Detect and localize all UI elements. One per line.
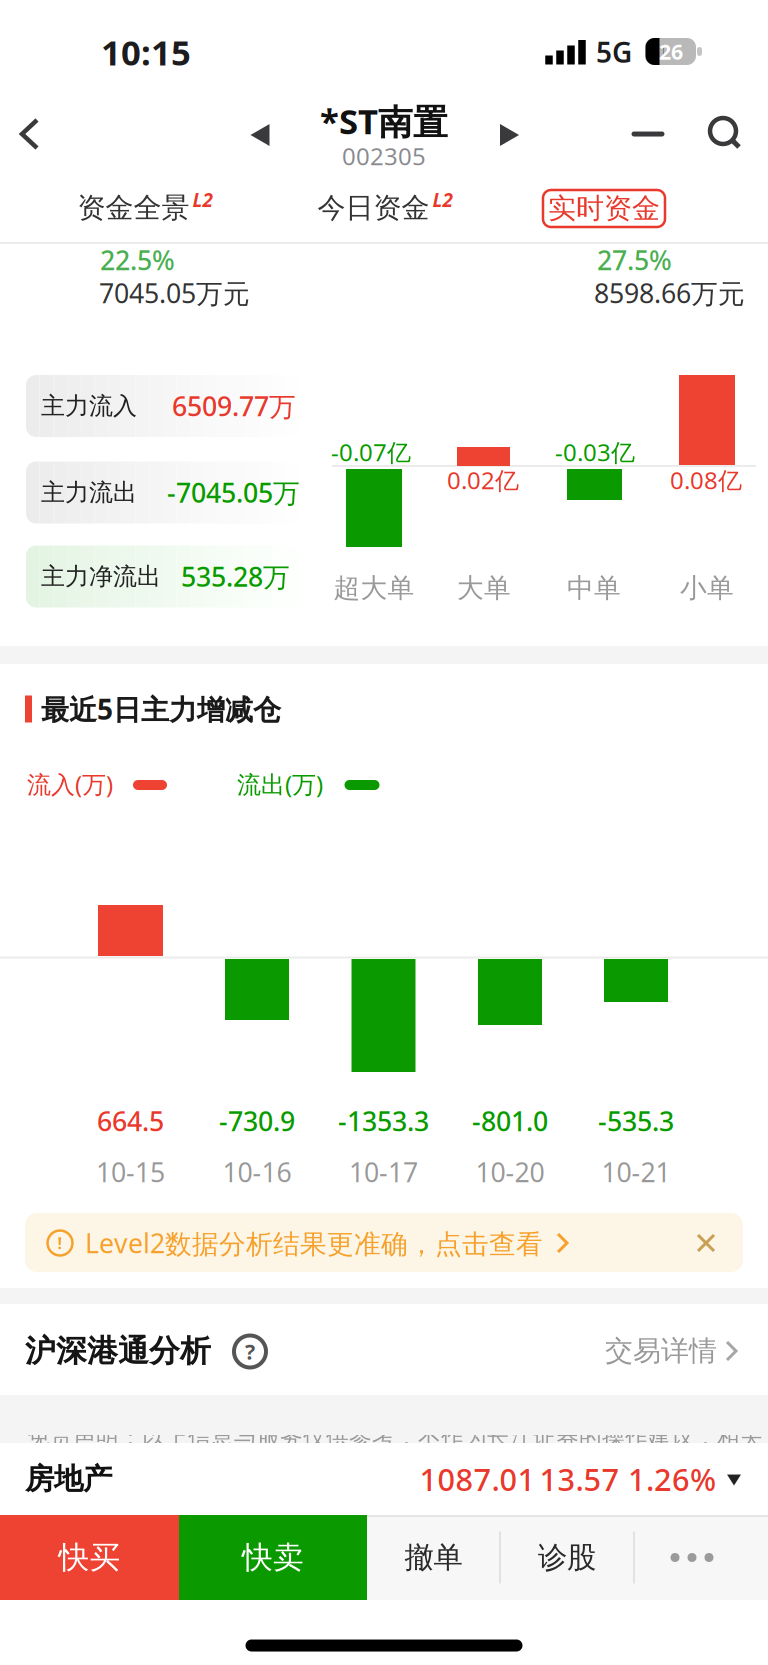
staticText: 资金全景: [77, 191, 189, 225]
staticText: ?: [245, 1337, 255, 1366]
staticText: 主力流入: [41, 391, 137, 421]
button[interactable]: 诊股: [501, 1515, 633, 1600]
staticText: 0.02亿: [447, 464, 519, 496]
staticText: 诊股: [538, 1539, 596, 1575]
button[interactable]: 资金全景: [77, 191, 212, 225]
staticText: 小单: [680, 572, 734, 604]
staticText: 664.5: [97, 1103, 164, 1139]
button[interactable]: 快买: [0, 1515, 179, 1600]
staticText: 5G: [596, 33, 632, 71]
button[interactable]: 今日资金: [317, 191, 452, 225]
staticText: L2: [432, 187, 452, 213]
staticText: *ST南置: [320, 98, 448, 144]
staticText: 6509.77万: [172, 388, 296, 424]
staticText: 中单: [567, 572, 621, 604]
staticText: -730.9: [219, 1103, 295, 1139]
button[interactable]: Next stock: [500, 124, 519, 146]
staticText: L2: [192, 187, 212, 213]
button[interactable]: Previous stock: [250, 124, 269, 146]
staticText: 快卖: [242, 1539, 304, 1576]
staticText: -801.0: [472, 1103, 548, 1139]
staticText: !: [57, 1232, 62, 1254]
staticText: 1.26%: [628, 1459, 716, 1499]
staticText: 主力净流出: [41, 562, 161, 591]
button[interactable]: Back: [20, 118, 40, 150]
staticText: 快买: [58, 1539, 120, 1576]
staticText: 535.28万: [181, 559, 290, 594]
staticText: 10-20: [475, 1154, 544, 1190]
staticText: 交易详情: [605, 1334, 717, 1368]
staticText: 10-16: [222, 1154, 291, 1190]
button[interactable]: More: [625, 1515, 759, 1600]
staticText: 8598.66万元: [594, 275, 745, 311]
staticText: 002305: [342, 140, 426, 172]
staticText: 最近5日主力增减仓: [41, 690, 281, 728]
button[interactable]: 交易详情: [605, 1334, 739, 1368]
staticText: 1087.01: [419, 1459, 535, 1499]
staticText: 10-21: [601, 1154, 670, 1190]
staticText: 大单: [457, 572, 511, 604]
button[interactable]: 房地产: [0, 1443, 768, 1515]
staticText: 超大单: [333, 572, 414, 604]
staticText: -0.07亿: [331, 436, 411, 468]
button[interactable]: 撤单: [367, 1515, 500, 1600]
staticText: 26: [659, 37, 683, 66]
staticText: 今日资金: [317, 191, 429, 225]
button[interactable]: Minimize: [631, 131, 664, 136]
staticText: 实时资金: [548, 191, 660, 226]
staticText: 27.5%: [597, 242, 672, 278]
button[interactable]: 快卖: [179, 1515, 367, 1600]
staticText: 撤单: [404, 1539, 462, 1575]
staticText: 流入(万): [27, 768, 113, 800]
staticText: 10-17: [349, 1154, 418, 1190]
staticText: -1353.3: [338, 1103, 429, 1139]
staticText: 13.57: [539, 1459, 619, 1499]
staticText: 7045.05万元: [99, 275, 250, 311]
staticText: -0.03亿: [555, 436, 635, 468]
staticText: Level2数据分析结果更准确，点击查看: [85, 1225, 543, 1261]
button[interactable]: !: [25, 1213, 743, 1272]
staticText: 10-15: [96, 1154, 165, 1190]
staticText: 房地产: [25, 1461, 112, 1497]
staticText: -535.3: [598, 1103, 674, 1139]
button[interactable]: Help: [232, 1334, 267, 1369]
staticText: 主力流出: [41, 478, 137, 507]
staticText: -7045.05万: [167, 475, 300, 510]
staticText: 流出(万): [237, 768, 323, 800]
button[interactable]: Dismiss: [696, 1233, 716, 1253]
staticText: 免责声明：以上信息与服务仅供参考，不作为长江证券的操作建议，相关风: [27, 1423, 763, 1479]
staticText: 0.08亿: [670, 464, 742, 496]
staticText: 22.5%: [100, 242, 175, 278]
staticText: 沪深港通分析: [25, 1332, 211, 1370]
staticText: 10:15: [101, 29, 191, 75]
button[interactable]: Search: [708, 116, 742, 150]
button[interactable]: 实时资金: [543, 190, 665, 227]
